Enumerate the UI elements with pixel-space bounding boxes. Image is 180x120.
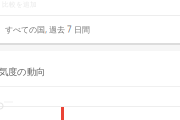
button[interactable]: すべての国, 過去 7 日間 [0, 16, 180, 43]
staticText: 人気度の動向 [0, 66, 45, 78]
staticText: 比較を追加 [2, 0, 37, 9]
staticText: すべての国, 過去 7 日間 [5, 24, 90, 35]
